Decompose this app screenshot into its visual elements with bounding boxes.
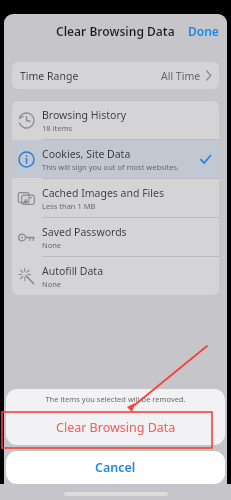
staticText: This will sign you out of most websites. [42, 162, 180, 172]
staticText: 18 items [42, 123, 73, 133]
button[interactable]: Done [180, 17, 227, 45]
staticText: None [42, 240, 62, 250]
staticText: Clear Browsing Data [56, 419, 176, 436]
staticText: Clear Browsing Data [56, 23, 175, 39]
button[interactable]: Autofill Data [12, 257, 219, 295]
staticText: Cached Images and Files [42, 186, 164, 200]
button[interactable]: Clear Browsing Data [6, 409, 225, 445]
button[interactable]: Saved Passwords [12, 218, 219, 256]
staticText: Autofill Data [42, 264, 104, 278]
button[interactable]: Browsing History [12, 101, 219, 139]
staticText: The items you selected will be removed. [45, 394, 186, 404]
staticText: Saved Passwords [42, 225, 127, 239]
button[interactable]: Cached Images and Files [12, 179, 219, 217]
staticText: Time Range [20, 69, 79, 83]
button[interactable]: Cookies, Site Data [12, 140, 219, 178]
staticText: Less than 1 MB [42, 201, 96, 211]
button[interactable]: Time Range [12, 62, 219, 89]
staticText: All Time [161, 69, 201, 83]
staticText: Cancel [95, 459, 136, 476]
staticText: None [42, 279, 62, 289]
staticText: Browsing History [42, 108, 127, 122]
button[interactable]: Cancel [6, 451, 225, 484]
staticText: Done [188, 23, 219, 39]
staticText: Cookies, Site Data [42, 147, 131, 161]
